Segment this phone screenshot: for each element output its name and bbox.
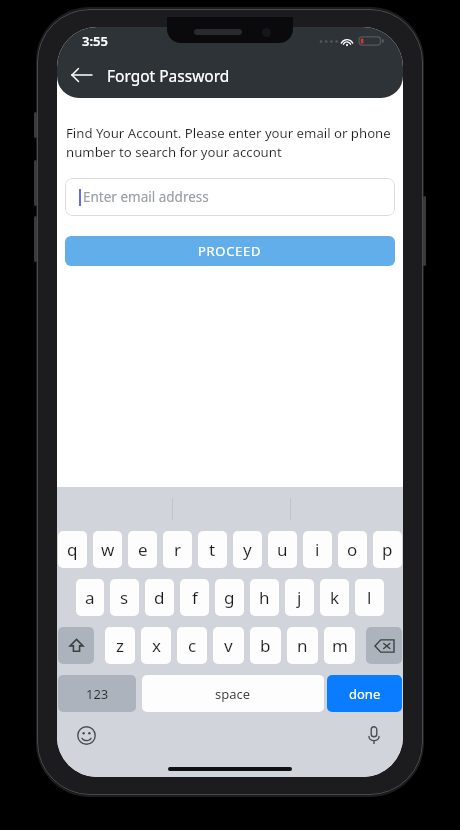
button[interactable]: k <box>320 579 349 616</box>
button[interactable]: l <box>355 579 384 616</box>
staticText: e <box>138 538 148 561</box>
staticText: y <box>243 538 252 561</box>
staticText: u <box>277 538 288 561</box>
button[interactable]: v <box>213 627 244 664</box>
button[interactable]: Shift <box>58 627 94 664</box>
button[interactable]: m <box>324 627 355 664</box>
staticText: t <box>209 538 216 561</box>
staticText: Find Your Account. Please enter your ema… <box>66 124 394 161</box>
staticText: done <box>349 685 381 703</box>
button[interactable]: q <box>58 531 87 568</box>
staticText: b <box>260 634 271 657</box>
button[interactable]: b <box>250 627 281 664</box>
staticText: g <box>224 586 235 609</box>
staticText: Enter email address <box>83 188 209 206</box>
staticText: r <box>174 538 182 561</box>
button[interactable]: space <box>142 675 324 712</box>
staticText: i <box>315 538 320 561</box>
button[interactable]: r <box>163 531 192 568</box>
staticText: Forgot Password <box>107 65 230 86</box>
button[interactable]: Emoji <box>71 720 101 750</box>
staticText: m <box>332 634 348 657</box>
button[interactable]: x <box>141 627 171 664</box>
staticText: n <box>297 634 308 657</box>
button[interactable]: o <box>338 531 367 568</box>
button[interactable]: s <box>110 579 139 616</box>
button[interactable]: Enter email address <box>65 178 395 216</box>
button[interactable]: Voice input <box>359 720 389 750</box>
staticText: v <box>224 634 233 657</box>
staticText: w <box>101 538 115 561</box>
staticText: space <box>215 685 251 703</box>
staticText: f <box>192 586 198 609</box>
button[interactable]: n <box>287 627 318 664</box>
button[interactable]: Back <box>61 58 101 92</box>
button[interactable]: y <box>233 531 262 568</box>
staticText: 3:55 <box>82 32 108 50</box>
staticText: c <box>188 634 197 657</box>
button[interactable]: u <box>268 531 297 568</box>
button[interactable]: z <box>105 627 135 664</box>
button[interactable]: e <box>128 531 157 568</box>
button[interactable]: i <box>303 531 332 568</box>
button[interactable]: f <box>180 579 209 616</box>
button[interactable]: p <box>373 531 402 568</box>
staticText: d <box>154 586 165 609</box>
button[interactable]: 123 <box>58 675 136 712</box>
staticText: a <box>85 586 95 609</box>
staticText: q <box>67 538 78 561</box>
staticText: l <box>367 586 372 609</box>
button[interactable]: g <box>215 579 244 616</box>
button[interactable]: d <box>145 579 174 616</box>
button[interactable]: t <box>198 531 227 568</box>
staticText: z <box>116 634 124 657</box>
button[interactable]: h <box>250 579 279 616</box>
button[interactable]: done <box>327 675 402 712</box>
button[interactable]: Backspace <box>366 627 402 664</box>
staticText: 123 <box>86 685 109 703</box>
staticText: s <box>120 586 129 609</box>
staticText: j <box>297 586 302 609</box>
button[interactable]: a <box>76 579 104 616</box>
button[interactable]: PROCEED <box>65 236 395 266</box>
staticText: x <box>152 634 161 657</box>
staticText: o <box>347 538 358 561</box>
button[interactable]: w <box>93 531 122 568</box>
staticText: k <box>330 586 340 609</box>
staticText: p <box>382 538 393 561</box>
button[interactable]: j <box>285 579 314 616</box>
staticText: h <box>259 586 270 609</box>
staticText: PROCEED <box>198 242 262 260</box>
button[interactable]: c <box>177 627 207 664</box>
